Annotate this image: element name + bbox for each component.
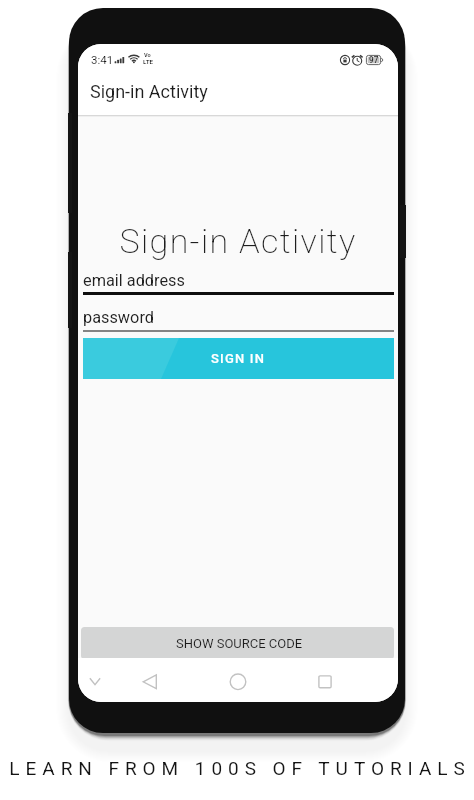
staticText: email address [83, 271, 185, 290]
staticText: Sign-in Activity [78, 221, 398, 261]
button[interactable]: SHOW SOURCE CODE [81, 627, 394, 659]
button[interactable]: Home [216, 658, 260, 702]
staticText: password [83, 308, 154, 327]
staticText: LEARN FROM 100S OF TUTORIALS [3, 757, 474, 779]
button[interactable]: Hide keyboard [78, 658, 112, 702]
button[interactable]: Recent apps [303, 658, 347, 702]
staticText: SIGN IN [211, 351, 266, 366]
staticText: Vo [144, 52, 151, 59]
staticText: 97 [369, 55, 379, 65]
staticText: 3:41 [91, 53, 114, 66]
button[interactable]: SIGN IN [83, 338, 394, 379]
staticText: LTE [143, 58, 153, 65]
button[interactable]: Back [128, 658, 172, 702]
staticText: Sign-in Activity [90, 81, 208, 102]
staticText: SHOW SOURCE CODE [176, 636, 303, 651]
